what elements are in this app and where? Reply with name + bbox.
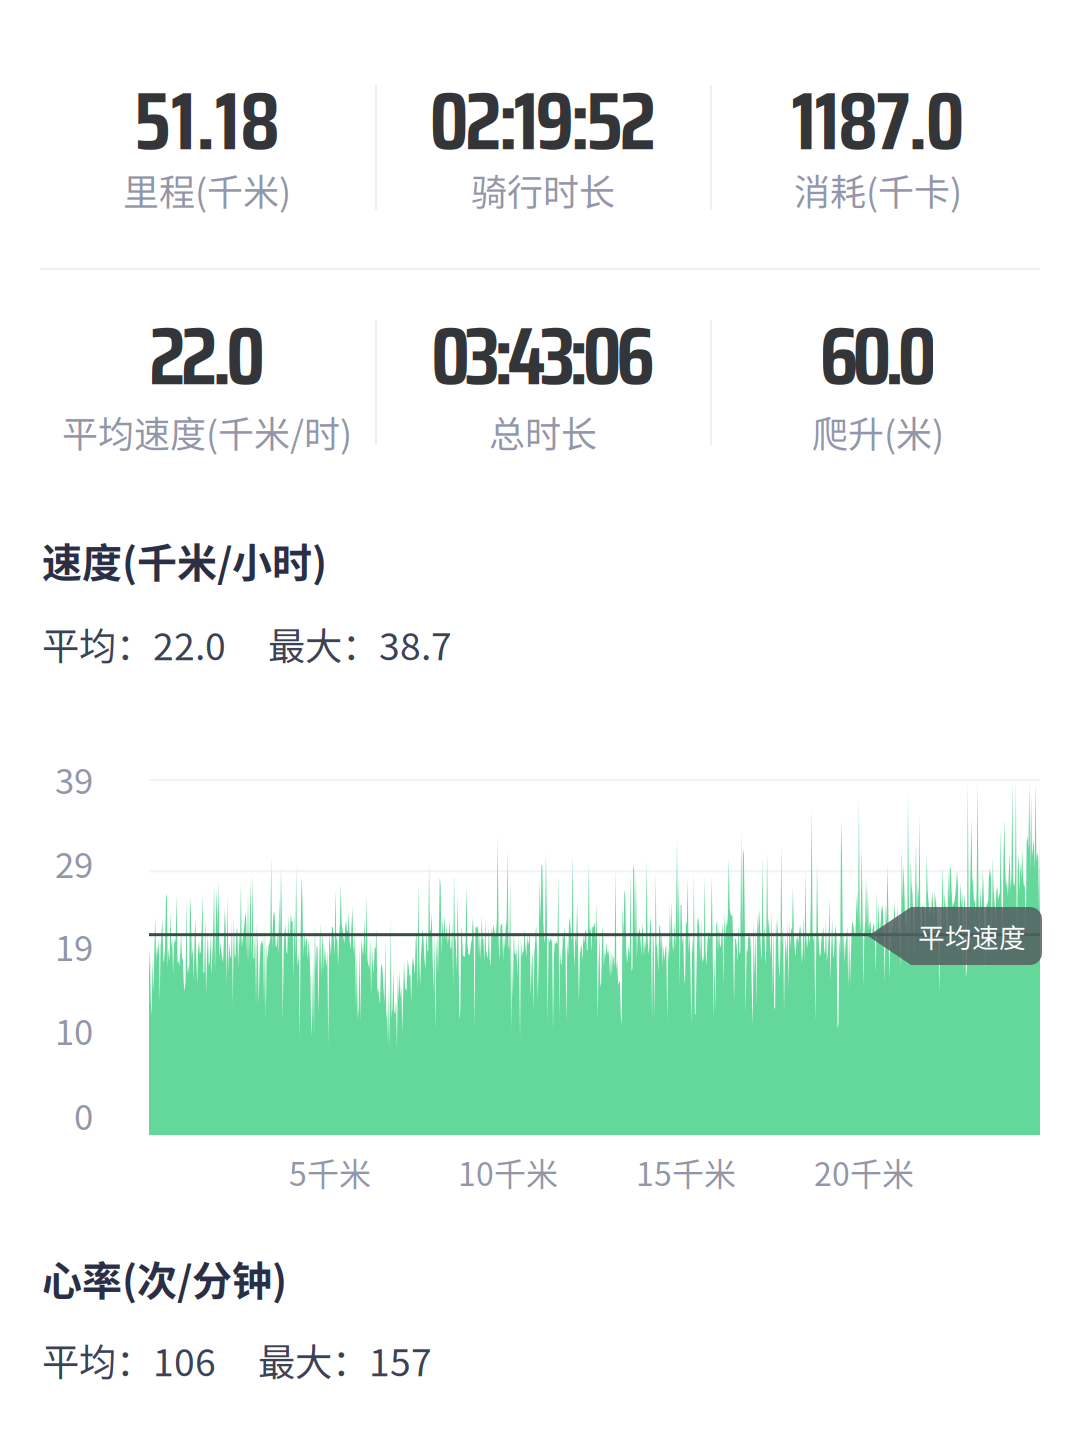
staticText: 106: [153, 1333, 216, 1387]
staticText: 0: [74, 1090, 93, 1140]
staticText: 里程(千米): [123, 164, 291, 216]
staticText: 5千米: [289, 1149, 371, 1195]
staticText: 1187.0: [791, 57, 964, 185]
staticText: 消耗(千卡): [794, 164, 962, 216]
staticText: 60.0: [820, 292, 936, 420]
staticText: 22.0: [153, 617, 226, 671]
staticText: 20千米: [814, 1149, 914, 1195]
staticText: 心率(次/分钟): [42, 1249, 287, 1307]
staticText: 38.7: [379, 617, 452, 671]
staticText: 10千米: [458, 1149, 558, 1195]
staticText: 10: [55, 1005, 93, 1055]
staticText: 速度(千米/小时): [42, 531, 327, 589]
staticText: 最大：: [258, 1333, 369, 1387]
staticText: 157: [369, 1333, 432, 1387]
staticText: 03:43:06: [431, 292, 655, 420]
staticText: 平均速度: [918, 917, 1026, 955]
staticText: 平均：: [42, 617, 153, 671]
staticText: 最大：: [268, 617, 379, 671]
staticText: 02:19:52: [430, 57, 656, 185]
staticText: 总时长: [489, 406, 597, 458]
staticText: 22.0: [149, 292, 265, 420]
staticText: 骑行时长: [471, 164, 615, 216]
staticText: 19: [55, 921, 93, 971]
staticText: 39: [55, 754, 93, 804]
staticText: 平均速度(千米/时): [62, 406, 352, 458]
staticText: 爬升(米): [812, 406, 944, 458]
staticText: 51.18: [134, 57, 280, 185]
staticText: 平均：: [42, 1333, 153, 1387]
staticText: 15千米: [636, 1149, 736, 1195]
staticText: 29: [55, 838, 93, 888]
